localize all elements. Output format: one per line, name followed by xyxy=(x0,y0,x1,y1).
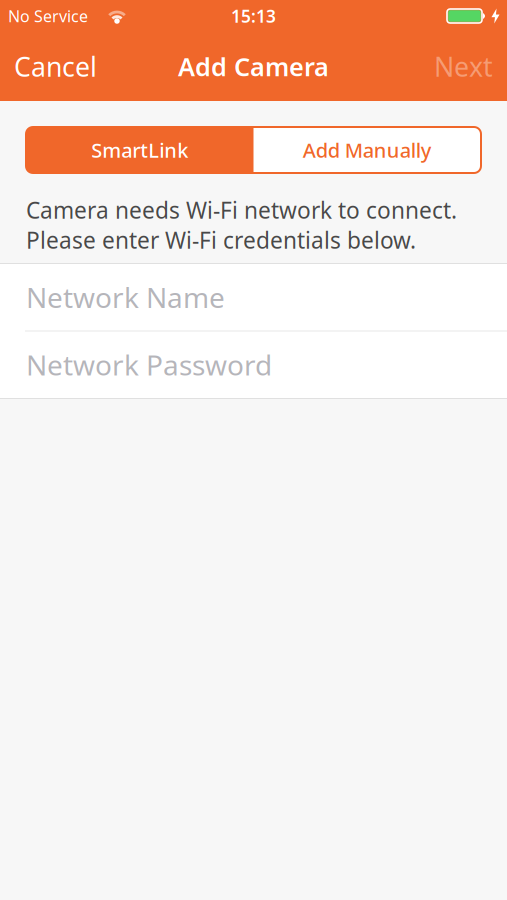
button[interactable]: Cancel xyxy=(14,49,97,84)
staticText: Cancel xyxy=(14,49,97,84)
staticText: Add Manually xyxy=(303,137,432,163)
staticText: Add Camera xyxy=(178,50,329,83)
staticText: Please enter Wi-Fi credentials below. xyxy=(26,225,416,255)
button[interactable]: Network Password xyxy=(0,331,507,398)
button[interactable]: Network Name xyxy=(0,264,507,330)
staticText: Camera needs Wi-Fi network to connect. xyxy=(26,195,457,225)
button[interactable]: Add Manually xyxy=(253,127,481,173)
staticText: SmartLink xyxy=(91,137,188,163)
staticText: Network Name xyxy=(26,279,225,316)
staticText: 15:13 xyxy=(231,4,276,27)
staticText: Next xyxy=(434,49,493,84)
staticText: Network Password xyxy=(26,346,272,383)
staticText: No Service xyxy=(8,5,88,27)
button[interactable]: SmartLink xyxy=(26,127,253,173)
button[interactable]: Next xyxy=(434,49,493,84)
